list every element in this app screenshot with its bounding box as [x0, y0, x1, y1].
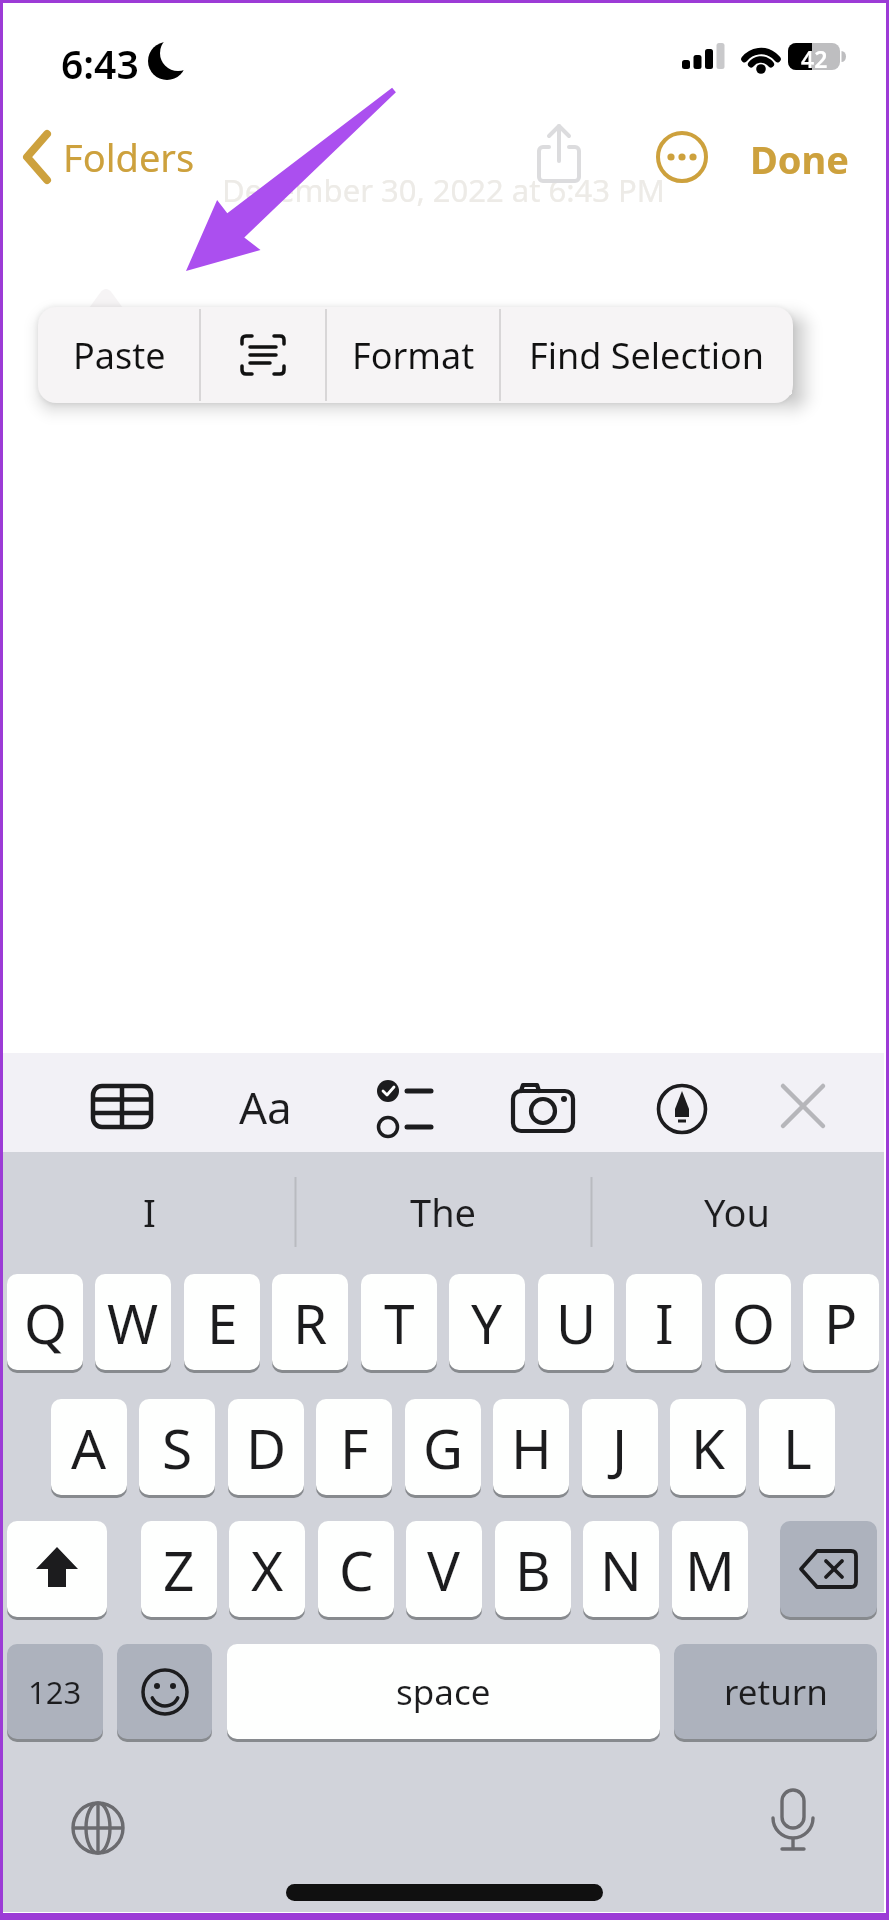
- button[interactable]: space: [227, 1644, 660, 1739]
- button[interactable]: J: [582, 1399, 658, 1495]
- staticText: E: [207, 1285, 238, 1360]
- button[interactable]: L: [759, 1399, 835, 1495]
- button[interactable]: [656, 1083, 708, 1135]
- staticText: Y: [471, 1285, 503, 1360]
- staticText: return: [724, 1668, 828, 1716]
- staticText: Z: [163, 1532, 195, 1607]
- button[interactable]: [200, 307, 326, 403]
- button[interactable]: Y: [449, 1274, 525, 1370]
- button[interactable]: V: [406, 1521, 482, 1617]
- staticText: L: [783, 1410, 812, 1485]
- button[interactable]: F: [316, 1399, 392, 1495]
- staticText: X: [251, 1532, 284, 1607]
- staticText: M: [685, 1532, 735, 1607]
- staticText: H: [511, 1410, 552, 1485]
- staticText: B: [515, 1532, 551, 1607]
- button[interactable]: [511, 1081, 575, 1133]
- staticText: P: [824, 1285, 858, 1360]
- staticText: S: [162, 1410, 193, 1485]
- staticText: N: [600, 1532, 642, 1607]
- button[interactable]: [656, 131, 708, 183]
- staticText: C: [339, 1532, 374, 1607]
- staticText: Find Selection: [529, 331, 764, 380]
- button[interactable]: A: [51, 1399, 127, 1495]
- button[interactable]: C: [318, 1521, 394, 1617]
- button[interactable]: S: [139, 1399, 215, 1495]
- button[interactable]: [781, 1084, 825, 1128]
- button[interactable]: I: [626, 1274, 702, 1370]
- button[interactable]: [117, 1644, 212, 1739]
- button[interactable]: W: [95, 1274, 171, 1370]
- button[interactable]: T: [361, 1274, 437, 1370]
- staticText: Folders: [63, 131, 195, 183]
- button[interactable]: [763, 1788, 823, 1858]
- button[interactable]: I: [3, 1162, 295, 1262]
- staticText: 123: [28, 1671, 82, 1713]
- button[interactable]: O: [715, 1274, 791, 1370]
- button[interactable]: Find Selection: [500, 307, 793, 403]
- button[interactable]: R: [272, 1274, 348, 1370]
- button[interactable]: [780, 1521, 877, 1617]
- staticText: Paste: [73, 331, 166, 380]
- button[interactable]: [375, 1077, 435, 1139]
- button[interactable]: Q: [7, 1274, 83, 1370]
- staticText: Q: [24, 1285, 67, 1360]
- staticText: You: [704, 1186, 771, 1238]
- button[interactable]: [7, 1521, 107, 1617]
- staticText: W: [107, 1285, 159, 1360]
- staticText: December 30, 2022 at 6:43 PM: [3, 169, 884, 211]
- button[interactable]: Paste: [38, 307, 200, 403]
- button[interactable]: U: [538, 1274, 614, 1370]
- staticText: Format: [352, 331, 475, 380]
- staticText: G: [423, 1410, 464, 1485]
- staticText: D: [246, 1410, 287, 1485]
- button[interactable]: M: [672, 1521, 748, 1617]
- button[interactable]: E: [184, 1274, 260, 1370]
- staticText: T: [384, 1285, 415, 1360]
- button[interactable]: You: [591, 1162, 884, 1262]
- button[interactable]: N: [583, 1521, 659, 1617]
- button[interactable]: K: [670, 1399, 746, 1495]
- staticText: O: [732, 1285, 775, 1360]
- staticText: I: [143, 1186, 156, 1238]
- staticText: 6:43: [61, 37, 139, 90]
- button[interactable]: return: [674, 1644, 877, 1739]
- staticText: 42: [801, 43, 828, 70]
- button[interactable]: Folders: [23, 131, 195, 183]
- staticText: A: [71, 1410, 107, 1485]
- staticText: V: [427, 1532, 461, 1607]
- button[interactable]: [70, 1800, 126, 1856]
- button[interactable]: Format: [326, 307, 500, 403]
- staticText: The: [410, 1186, 477, 1238]
- button[interactable]: D: [228, 1399, 304, 1495]
- button[interactable]: X: [229, 1521, 305, 1617]
- button[interactable]: 123: [7, 1644, 103, 1739]
- staticText: R: [293, 1285, 328, 1360]
- button[interactable]: H: [493, 1399, 569, 1495]
- staticText: I: [655, 1285, 674, 1360]
- button[interactable]: [535, 121, 583, 185]
- staticText: F: [340, 1410, 369, 1485]
- staticText: J: [612, 1410, 628, 1485]
- button[interactable]: Aa: [225, 1077, 305, 1137]
- button[interactable]: [91, 1084, 153, 1129]
- staticText: Done: [750, 133, 849, 183]
- button[interactable]: Z: [141, 1521, 217, 1617]
- staticText: U: [556, 1285, 597, 1360]
- button[interactable]: B: [495, 1521, 571, 1617]
- staticText: K: [691, 1410, 726, 1485]
- staticText: space: [396, 1668, 491, 1716]
- staticText: Aa: [239, 1077, 292, 1137]
- button[interactable]: Done: [749, 133, 849, 183]
- button[interactable]: The: [295, 1162, 591, 1262]
- button[interactable]: P: [803, 1274, 879, 1370]
- button[interactable]: G: [405, 1399, 481, 1495]
